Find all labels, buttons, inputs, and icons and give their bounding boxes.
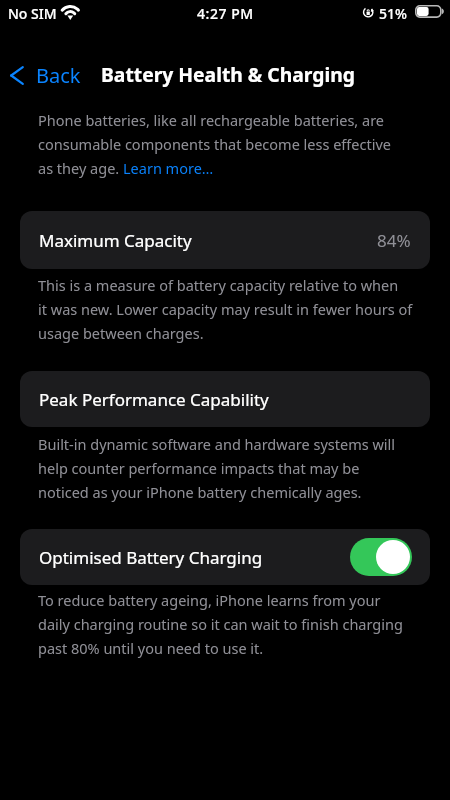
staticText: Phone batteries, like all rechargeable b… (38, 107, 391, 179)
staticText: 84% (377, 229, 411, 252)
button[interactable]: Optimised Battery Charging toggle, on (350, 538, 412, 576)
staticText: 4:27 PM (197, 4, 254, 23)
button[interactable]: Maximum Capacity (20, 211, 430, 269)
staticText: No SIM (8, 4, 57, 23)
staticText: Maximum Capacity (39, 229, 192, 252)
staticText: Back (36, 62, 81, 89)
staticText: Built‑in dynamic software and hardware s… (38, 431, 396, 503)
staticText: This is a measure of battery capacity re… (38, 272, 413, 344)
button[interactable]: Back (2, 58, 91, 95)
staticText: Battery Health & Charging (101, 61, 355, 87)
staticText: To reduce battery ageing, iPhone learns … (38, 587, 403, 659)
staticText: Optimised Battery Charging (39, 546, 263, 569)
staticText: 51% (379, 4, 407, 23)
button[interactable]: Peak Performance Capability (20, 371, 430, 427)
staticText: Peak Performance Capability (39, 388, 269, 411)
